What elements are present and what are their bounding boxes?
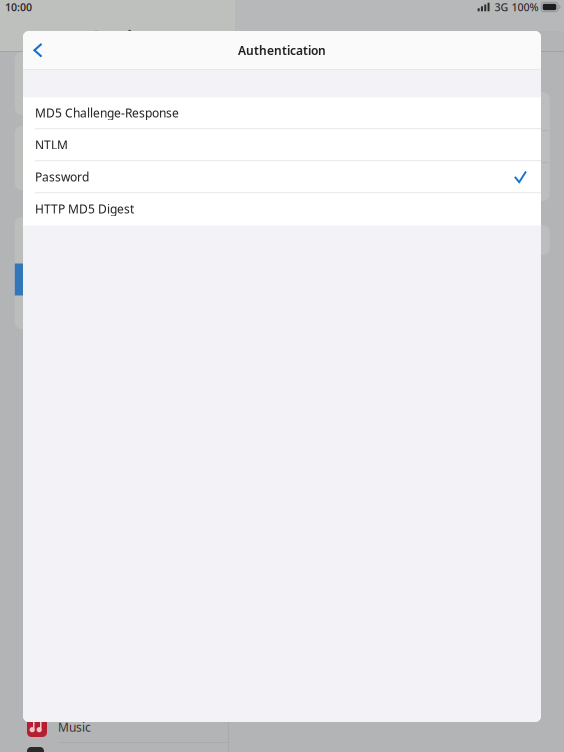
button[interactable]: MD5 Challenge-Response xyxy=(23,97,541,129)
button[interactable]: NTLM xyxy=(23,129,541,161)
button[interactable]: Back xyxy=(23,31,53,69)
staticText: MD5 Challenge-Response xyxy=(35,105,179,121)
staticText: NTLM xyxy=(35,137,68,153)
staticText: Settings xyxy=(91,25,163,48)
staticText: Done xyxy=(370,26,407,46)
staticText: 10:00 xyxy=(5,0,32,14)
staticText: Configure Profile xyxy=(245,26,366,46)
button[interactable]: Password xyxy=(23,161,541,193)
staticText: Password xyxy=(35,169,89,185)
staticText: HTTP MD5 Digest xyxy=(35,201,134,217)
staticText: Music xyxy=(58,719,91,735)
button[interactable]: HTTP MD5 Digest xyxy=(23,193,541,225)
staticText: 3G 100% xyxy=(495,0,539,14)
staticText: Authentication xyxy=(238,42,326,58)
